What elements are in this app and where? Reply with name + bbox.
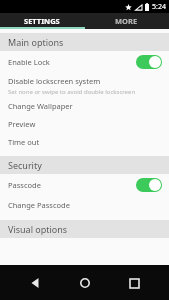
button[interactable]: Preview (0, 115, 169, 133)
button[interactable]: Enable Lock (0, 51, 169, 73)
staticText: Disable lockscreen system (8, 76, 101, 86)
button[interactable]: Recent apps (120, 269, 148, 297)
staticText: Change Passcode (8, 200, 70, 210)
staticText: Visual options (8, 223, 68, 235)
button[interactable]: MORE (84, 13, 169, 29)
staticText: Set none or swipe to avoid double locksc… (8, 88, 136, 96)
staticText: Time out (8, 137, 40, 147)
staticText: Passcode (8, 180, 41, 190)
staticText: 5:24 (152, 2, 166, 12)
button[interactable]: Disable lockscreen system (0, 73, 169, 97)
button[interactable]: Home (71, 269, 99, 297)
button[interactable]: Back (21, 269, 49, 297)
button[interactable]: Change Passcode (0, 196, 169, 214)
staticText: Preview (8, 119, 36, 129)
staticText: Main options (8, 36, 64, 48)
button[interactable]: Time out (0, 133, 169, 151)
button[interactable]: Passcode (0, 174, 169, 196)
button[interactable]: SETTINGS (0, 13, 84, 29)
button[interactable]: Change Wallpaper (0, 97, 169, 115)
staticText: Enable Lock (8, 57, 50, 67)
staticText: SETTINGS (24, 16, 60, 26)
staticText: Change Wallpaper (8, 101, 73, 111)
staticText: Security (8, 159, 42, 171)
staticText: MORE (115, 16, 138, 26)
